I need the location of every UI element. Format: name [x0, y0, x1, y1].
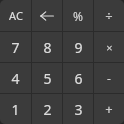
button[interactable]: 9: [63, 32, 93, 62]
staticText: AC: [9, 8, 23, 23]
staticText: %: [73, 8, 83, 24]
staticText: -: [107, 70, 111, 86]
button[interactable]: 3: [63, 94, 93, 124]
staticText: 9: [74, 38, 83, 57]
staticText: 4: [11, 69, 20, 88]
staticText: 3: [74, 100, 83, 119]
button[interactable]: 1: [0, 94, 31, 124]
button[interactable]: 6: [63, 63, 93, 93]
button[interactable]: ÷: [94, 0, 124, 31]
button[interactable]: ×: [94, 32, 124, 62]
button[interactable]: 2: [32, 94, 62, 124]
staticText: 5: [43, 69, 52, 88]
button[interactable]: 8: [32, 32, 62, 62]
button[interactable]: +: [94, 94, 124, 124]
staticText: ×: [106, 40, 113, 55]
staticText: 1: [11, 100, 20, 119]
staticText: 7: [11, 38, 20, 57]
button[interactable]: %: [63, 0, 93, 31]
button[interactable]: AC: [0, 0, 31, 31]
button[interactable]: 7: [0, 32, 31, 62]
staticText: ÷: [105, 7, 113, 25]
button[interactable]: Backspace: [32, 0, 62, 31]
button[interactable]: 4: [0, 63, 31, 93]
staticText: +: [105, 100, 113, 118]
button[interactable]: 5: [32, 63, 62, 93]
staticText: 2: [43, 100, 52, 119]
button[interactable]: -: [94, 63, 124, 93]
staticText: 8: [43, 38, 52, 57]
staticText: 6: [74, 69, 83, 88]
